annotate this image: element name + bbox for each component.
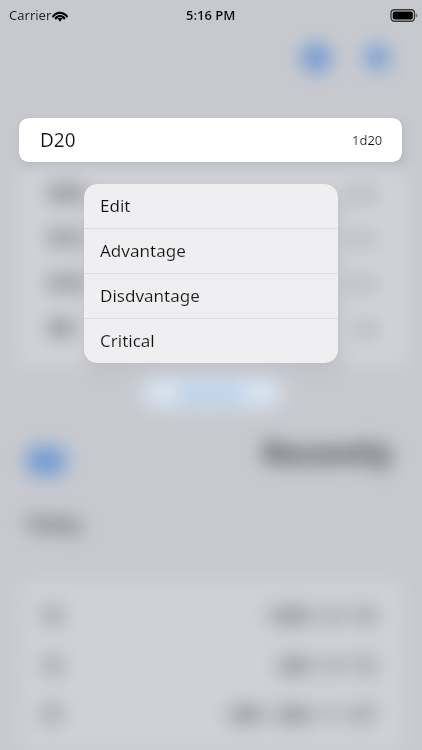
staticText: 5:16 PM — [186, 6, 236, 24]
button[interactable]: Critical — [84, 319, 338, 363]
staticText: Carrier — [9, 6, 52, 24]
staticText: 3d8 + 2d6 + 1 = 27 — [229, 703, 375, 726]
staticText: D10 — [48, 270, 84, 296]
staticText: Advantage — [100, 239, 186, 262]
other: Wi-Fi signal — [52, 9, 68, 21]
staticText: 2d6 + 3 = 12 — [278, 654, 375, 677]
staticText: Disdvantage — [100, 284, 200, 307]
staticText: D20 — [40, 127, 76, 153]
button[interactable]: D20 — [19, 118, 402, 162]
staticText: 1d20 — [352, 131, 383, 149]
staticText: Critical — [100, 329, 155, 352]
staticText: 16 — [42, 604, 62, 627]
staticText: Edit — [100, 194, 131, 217]
button[interactable]: Edit — [84, 184, 338, 229]
staticText: 1d20 + 4 = 16 — [268, 604, 375, 627]
other: Battery full — [391, 9, 419, 22]
staticText: Recently — [263, 432, 393, 473]
staticText: Today — [26, 511, 82, 537]
button[interactable]: Disdvantage — [84, 274, 338, 319]
staticText: D8 — [48, 315, 73, 341]
staticText: D12 — [48, 225, 84, 251]
button[interactable]: Advantage — [84, 229, 338, 274]
staticText: D20 — [48, 180, 84, 206]
